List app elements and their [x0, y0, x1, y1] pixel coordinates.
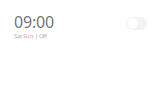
staticText: 09:00 [14, 11, 54, 33]
staticText: Sat Sun | Off [14, 32, 47, 40]
button[interactable]: Alarm on/off [126, 17, 147, 30]
